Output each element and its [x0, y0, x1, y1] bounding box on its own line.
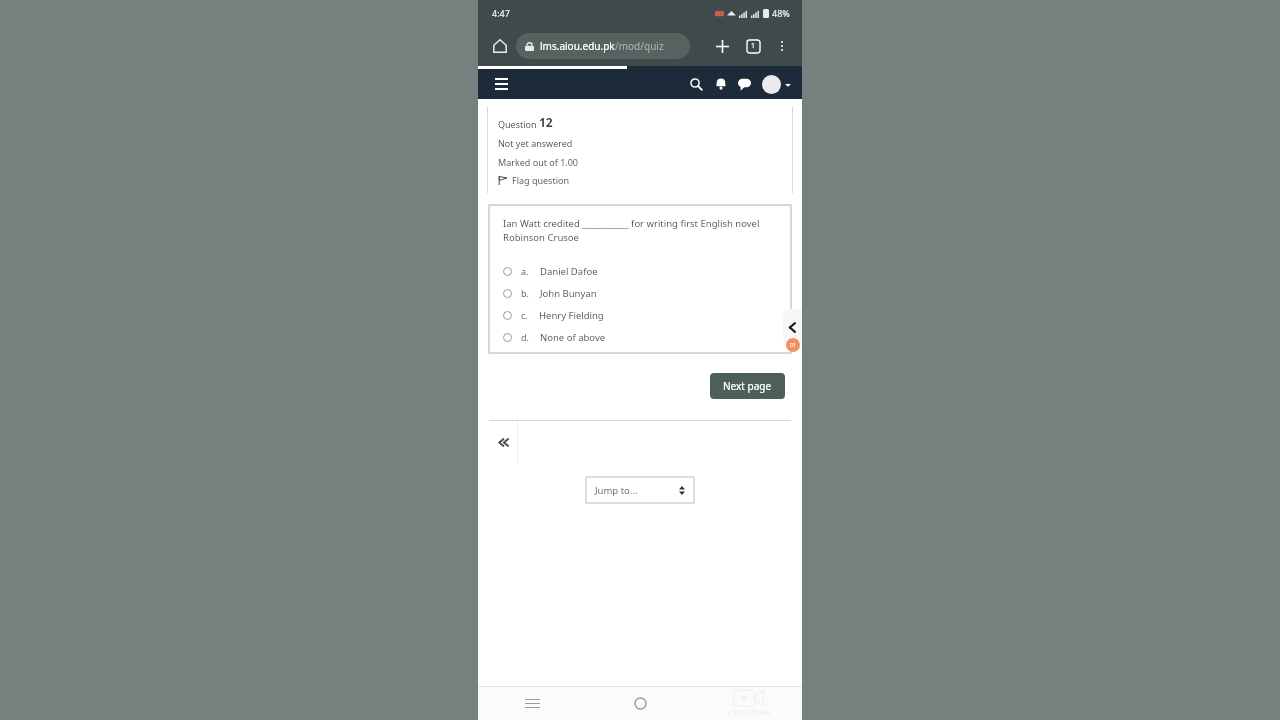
- staticText: Flag question: [512, 174, 569, 186]
- button[interactable]: Previous page: [489, 421, 517, 463]
- staticText: Marked out of 1.00: [498, 156, 579, 168]
- staticText: a.: [521, 265, 529, 277]
- button[interactable]: Next page: [710, 373, 785, 399]
- staticText: 4:47: [492, 7, 510, 19]
- button[interactable]: Account: [762, 75, 791, 94]
- button[interactable]: Home: [486, 32, 514, 60]
- staticText: d.: [521, 331, 529, 343]
- button[interactable]: Home: [586, 687, 694, 720]
- button[interactable]: lms.aiou.edu.pk: [516, 33, 690, 59]
- staticText: John Bunyan: [540, 287, 597, 300]
- button[interactable]: b.: [503, 282, 769, 304]
- button[interactable]: More options: [769, 33, 795, 59]
- staticText: Ian Watt credited ___________ for writin…: [503, 217, 769, 244]
- staticText: Question: [498, 118, 539, 130]
- staticText: Not yet answered: [498, 137, 573, 149]
- button[interactable]: Jump to page: [586, 477, 694, 503]
- button[interactable]: New tab: [709, 33, 735, 59]
- button[interactable]: a.: [503, 260, 769, 282]
- staticText: lms.aiou.edu.pk: [540, 39, 615, 53]
- button[interactable]: Messages: [733, 73, 755, 95]
- button[interactable]: c.: [503, 304, 769, 326]
- button[interactable]: Menu: [489, 72, 513, 96]
- staticText: b.: [521, 287, 529, 299]
- staticText: Next page: [723, 379, 772, 393]
- button[interactable]: d.: [503, 326, 769, 348]
- staticText: Jump to...: [595, 484, 638, 497]
- button[interactable]: Search: [685, 73, 707, 95]
- staticText: V RECORDER: [726, 707, 771, 717]
- button[interactable]: Tabs: [740, 33, 766, 59]
- button[interactable]: Recent apps: [478, 687, 586, 720]
- button[interactable]: Notifications: [710, 73, 732, 95]
- staticText: Daniel Dafoe: [540, 265, 598, 278]
- staticText: Henry Fielding: [539, 309, 604, 322]
- staticText: 48%: [772, 7, 790, 19]
- staticText: c.: [521, 309, 528, 321]
- staticText: None of above: [540, 331, 606, 344]
- staticText: 12: [539, 114, 553, 130]
- staticText: 01: [790, 342, 796, 349]
- staticText: 1: [751, 41, 756, 51]
- button[interactable]: Flag question: [498, 174, 569, 186]
- staticText: /mod/quiz: [615, 39, 664, 53]
- button[interactable]: Open side panel: [783, 309, 802, 345]
